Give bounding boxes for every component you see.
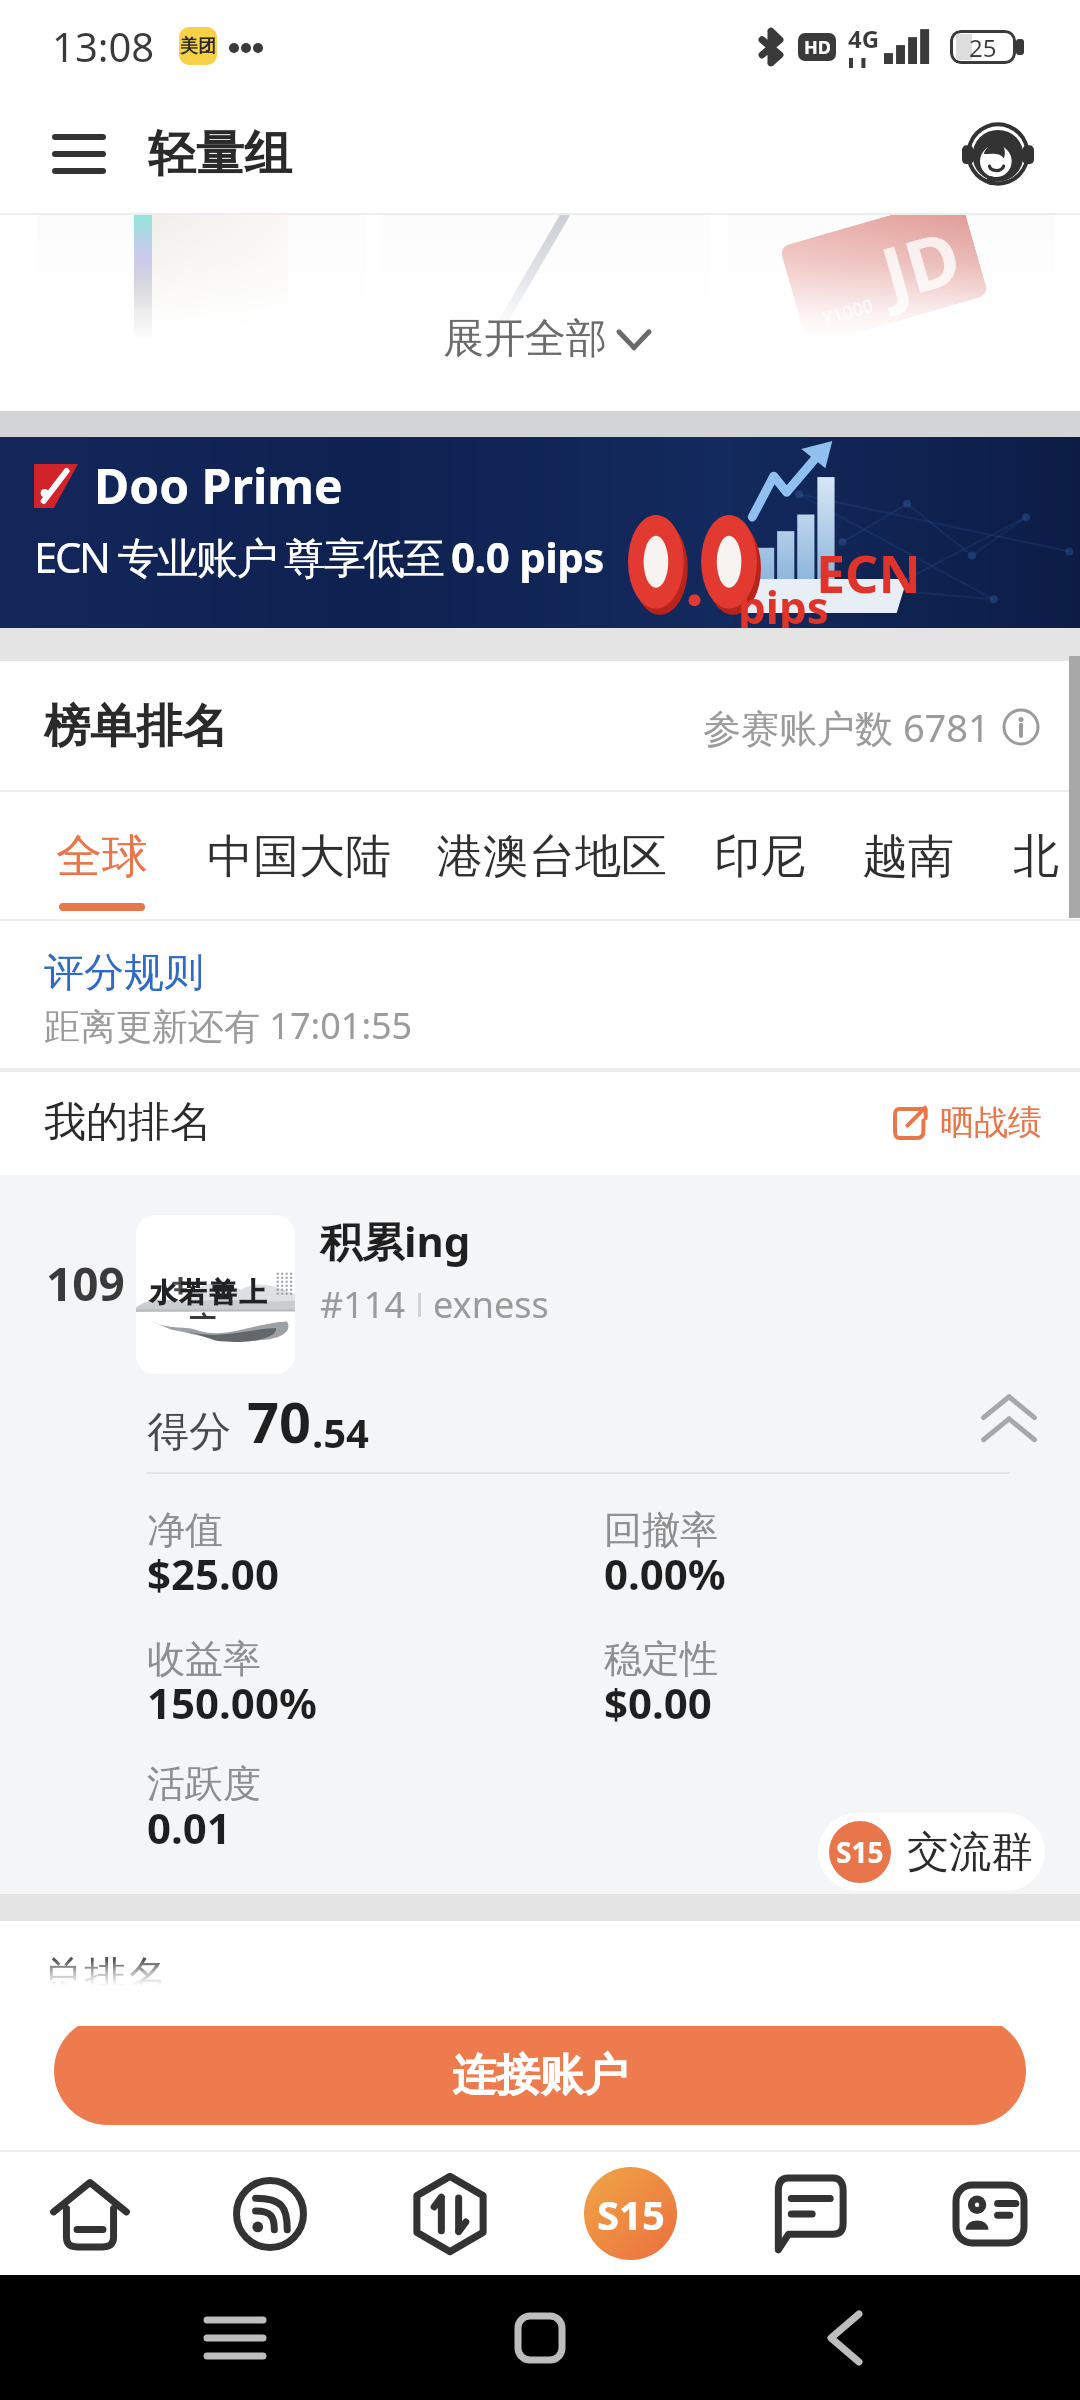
button[interactable]: 港澳台地区 bbox=[391, 792, 667, 921]
staticText: 全球 bbox=[56, 828, 148, 886]
staticText: 150.00% bbox=[147, 1674, 317, 1731]
staticText: 活跃度 bbox=[147, 1760, 261, 1808]
staticText: 距离更新还有 17:01:55 bbox=[44, 1001, 413, 1050]
staticText: 0.0 pips bbox=[451, 528, 604, 585]
staticText: 水若善上 bbox=[148, 1276, 268, 1310]
staticText: ECN 专业账户 尊享低至 bbox=[34, 528, 451, 585]
staticText: S15 bbox=[597, 2187, 665, 2241]
staticText: 展开全部 bbox=[443, 313, 607, 365]
button[interactable]: Home bbox=[0, 2152, 180, 2275]
staticText: ¥1000 bbox=[819, 293, 876, 331]
button[interactable]: S15 bbox=[540, 2152, 720, 2275]
button[interactable]: 印尼 bbox=[667, 792, 806, 921]
staticText: 收益率 bbox=[147, 1635, 261, 1683]
staticText: 中国大陆 bbox=[207, 828, 391, 886]
button[interactable]: Trade bbox=[360, 2152, 540, 2275]
staticText: 评分规则 bbox=[44, 947, 204, 997]
staticText: 净值 bbox=[147, 1506, 223, 1554]
staticText: 70 bbox=[247, 1383, 312, 1459]
button[interactable]: Messages bbox=[720, 2152, 900, 2275]
staticText: pips bbox=[738, 577, 829, 637]
button[interactable]: 北 bbox=[954, 792, 1059, 921]
button[interactable]: 越南 bbox=[806, 792, 954, 921]
staticText: JD bbox=[870, 215, 971, 321]
staticText: 港澳台地区 bbox=[437, 828, 667, 886]
button[interactable]: 晒战绩 bbox=[894, 1101, 1042, 1144]
staticText: 榜单排名 bbox=[44, 698, 228, 756]
staticText: 我的排名 bbox=[44, 1096, 212, 1149]
button[interactable]: 109 bbox=[0, 1175, 1080, 1894]
staticText: 美团 bbox=[180, 35, 216, 58]
staticText: 轻量组 bbox=[148, 124, 292, 184]
staticText: $25.00 bbox=[147, 1545, 279, 1602]
button[interactable]: Home bbox=[505, 2303, 575, 2373]
staticText: 0.01 bbox=[147, 1799, 231, 1856]
staticText: 总排名 bbox=[42, 1951, 168, 1992]
staticText: #114 bbox=[320, 1280, 406, 1329]
staticText: exness bbox=[433, 1280, 549, 1329]
button[interactable]: 展开全部 bbox=[400, 299, 690, 369]
button[interactable]: Collapse bbox=[980, 1391, 1038, 1449]
button[interactable]: 参赛账户数 6781 bbox=[703, 701, 1040, 753]
staticText: .54 bbox=[312, 1405, 369, 1459]
button[interactable]: Signals bbox=[180, 2152, 360, 2275]
staticText: 25 bbox=[969, 31, 997, 64]
staticText: 得分 bbox=[147, 1406, 231, 1459]
staticText: 4G bbox=[848, 22, 880, 55]
staticText: 参赛账户数 6781 bbox=[703, 701, 990, 753]
staticText: S15 bbox=[836, 1833, 884, 1871]
staticText: 交流群 bbox=[907, 1826, 1033, 1879]
staticText: 109 bbox=[46, 1252, 125, 1315]
staticText: 稳定性 bbox=[604, 1635, 718, 1683]
button[interactable]: Back bbox=[810, 2303, 880, 2373]
button[interactable]: 全球 bbox=[0, 792, 148, 921]
button[interactable]: Recents bbox=[200, 2303, 270, 2373]
staticText: 13:08 bbox=[52, 19, 155, 73]
staticText: 积累ing bbox=[320, 1212, 471, 1269]
button[interactable]: 连接账户 bbox=[54, 2017, 1026, 2125]
button[interactable]: 中国大陆 bbox=[148, 792, 391, 921]
staticText: 晒战绩 bbox=[940, 1101, 1042, 1144]
button[interactable]: S15 bbox=[818, 1813, 1045, 1891]
staticText: $0.00 bbox=[604, 1674, 712, 1731]
staticText: Doo Prime bbox=[94, 453, 343, 518]
button[interactable]: Profile bbox=[900, 2152, 1080, 2275]
staticText: 越南 bbox=[862, 828, 954, 886]
staticText: 回撤率 bbox=[604, 1506, 718, 1554]
staticText: HD bbox=[804, 35, 831, 60]
staticText: 0.00% bbox=[604, 1545, 726, 1602]
staticText: 印尼 bbox=[714, 828, 806, 886]
staticText: 连接账户 bbox=[452, 2048, 628, 2103]
button[interactable]: Customer service bbox=[952, 108, 1044, 200]
button[interactable]: 评分规则 bbox=[44, 947, 204, 997]
button[interactable]: Menu bbox=[44, 116, 114, 192]
staticText: ECN bbox=[816, 537, 921, 608]
staticText: 北 bbox=[1013, 828, 1059, 886]
